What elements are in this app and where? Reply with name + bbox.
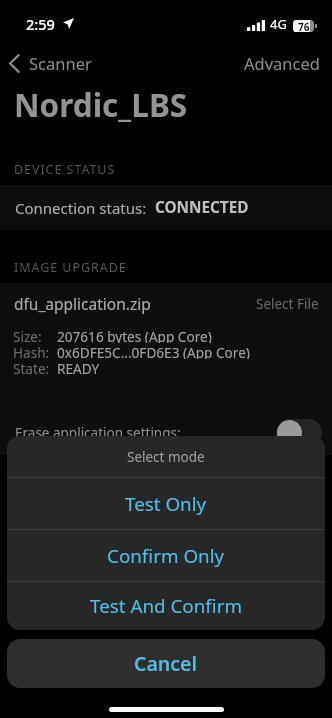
button[interactable]: Erase application settings: bbox=[0, 410, 332, 455]
staticText: Advanced bbox=[244, 52, 320, 74]
staticText: Test Only bbox=[125, 491, 207, 517]
button[interactable]: Scanner bbox=[0, 47, 100, 79]
staticText: Scanner bbox=[29, 52, 92, 74]
staticText: Confirm Only bbox=[107, 543, 225, 569]
staticText: 76 bbox=[298, 20, 310, 32]
button[interactable]: Advanced bbox=[232, 47, 332, 79]
staticText: DEVICE STATUS bbox=[14, 161, 116, 178]
staticText: IMAGE UPGRADE bbox=[14, 259, 127, 276]
staticText: Test And Confirm bbox=[90, 593, 243, 619]
staticText: Select File bbox=[256, 295, 319, 313]
staticText: Hash: bbox=[13, 343, 50, 359]
button[interactable]: Cancel bbox=[7, 639, 325, 688]
staticText: 207616 bytes (App Core) bbox=[57, 327, 212, 343]
staticText: 0x6DFE5C...0FD6E3 (App Core) bbox=[57, 343, 250, 359]
staticText: Cancel bbox=[134, 650, 198, 677]
staticText: 2:59 bbox=[26, 14, 55, 34]
staticText: CONNECTED bbox=[155, 197, 249, 218]
staticText: Size: bbox=[13, 327, 42, 343]
button[interactable]: Test Only bbox=[7, 478, 325, 529]
staticText: Erase application settings: bbox=[15, 424, 181, 442]
button[interactable]: Test And Confirm bbox=[7, 582, 325, 630]
staticText: Connection status: bbox=[15, 198, 147, 218]
button[interactable]: Connection status: bbox=[0, 185, 332, 230]
staticText: 4G bbox=[270, 15, 287, 33]
staticText: dfu_application.zip bbox=[14, 293, 151, 314]
button[interactable]: Select File bbox=[256, 295, 319, 313]
staticText: READY bbox=[57, 359, 100, 375]
staticText: State: bbox=[13, 359, 50, 375]
button[interactable]: Confirm Only bbox=[7, 530, 325, 581]
staticText: Select mode bbox=[127, 448, 205, 466]
staticText: Nordic_LBS bbox=[14, 83, 188, 126]
